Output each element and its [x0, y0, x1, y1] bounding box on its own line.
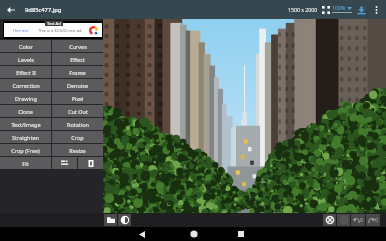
button[interactable]: Recent apps — [226, 227, 256, 241]
button[interactable]: Redo — [366, 214, 380, 226]
button[interactable]: Levels — [0, 53, 51, 65]
staticText: Text/Image — [11, 121, 41, 128]
staticText: Crop — [71, 134, 84, 141]
staticText: Rotation — [67, 121, 89, 128]
button[interactable]: Save — [355, 0, 368, 19]
button[interactable]: Back — [127, 227, 157, 241]
button[interactable]: Effect — [52, 53, 103, 65]
button[interactable]: Open file — [104, 214, 117, 226]
staticText: Effect II — [16, 69, 36, 76]
staticText: 0 — [375, 217, 378, 224]
button[interactable]: Reset — [323, 214, 336, 226]
button[interactable]: Straighten — [0, 131, 51, 143]
staticText: Pixel — [71, 95, 84, 102]
staticText: Levels — [18, 56, 34, 63]
staticText: 100% — [332, 4, 346, 11]
button[interactable]: Fit — [0, 157, 51, 169]
button[interactable]: Compare original — [337, 214, 350, 226]
button[interactable]: Clone — [0, 105, 51, 117]
staticText: Crop (Free) — [11, 147, 40, 154]
button[interactable]: Cut Out — [52, 105, 103, 117]
button[interactable]: Rotation — [52, 118, 103, 130]
staticText: 9d85c477.jpg — [25, 6, 62, 14]
staticText: This is a 320x50 test ad — [38, 28, 82, 33]
staticText: Straighten — [12, 134, 39, 141]
button[interactable]: More options — [370, 0, 382, 19]
button[interactable]: Denoise — [52, 79, 103, 91]
button[interactable]: Frame — [52, 66, 103, 78]
button[interactable]: Alignment — [52, 157, 77, 169]
button[interactable]: Resize — [52, 144, 103, 156]
button[interactable]: Color — [0, 40, 51, 52]
staticText: Hire me! — [13, 28, 29, 33]
button[interactable]: Back — [3, 2, 19, 18]
button[interactable]: Curves — [52, 40, 103, 52]
button[interactable]: Drawing — [0, 92, 51, 104]
button[interactable]: Home — [179, 227, 209, 241]
button[interactable]: Fit to screen — [319, 0, 332, 19]
staticText: Drawing — [15, 95, 37, 102]
button[interactable]: Correction — [0, 79, 51, 91]
staticText: Resize — [69, 147, 86, 154]
button[interactable]: Text/Image — [0, 118, 51, 130]
staticText: Frame — [69, 69, 86, 76]
button[interactable]: Effect II — [0, 66, 51, 78]
staticText: Fit — [22, 160, 29, 167]
button[interactable]: Undo — [351, 214, 365, 226]
staticText: Color — [19, 43, 33, 50]
staticText: Curves — [69, 43, 87, 50]
staticText: Correction — [12, 82, 40, 89]
button[interactable]: Crop — [52, 131, 103, 143]
button[interactable]: Pixel — [52, 92, 103, 104]
button[interactable]: Toggle background — [118, 214, 131, 226]
button[interactable]: Zoom level — [332, 4, 352, 13]
staticText: 0 — [360, 217, 363, 224]
staticText: Effect — [70, 56, 85, 63]
staticText: Cut Out — [68, 108, 88, 115]
staticText: 1500 x 2000 — [288, 6, 318, 13]
staticText: Clone — [18, 108, 33, 115]
staticText: Test Ad — [47, 21, 61, 26]
button[interactable]: Orientation — [78, 157, 103, 169]
button[interactable]: Crop (Free) — [0, 144, 51, 156]
staticText: Denoise — [67, 82, 88, 89]
